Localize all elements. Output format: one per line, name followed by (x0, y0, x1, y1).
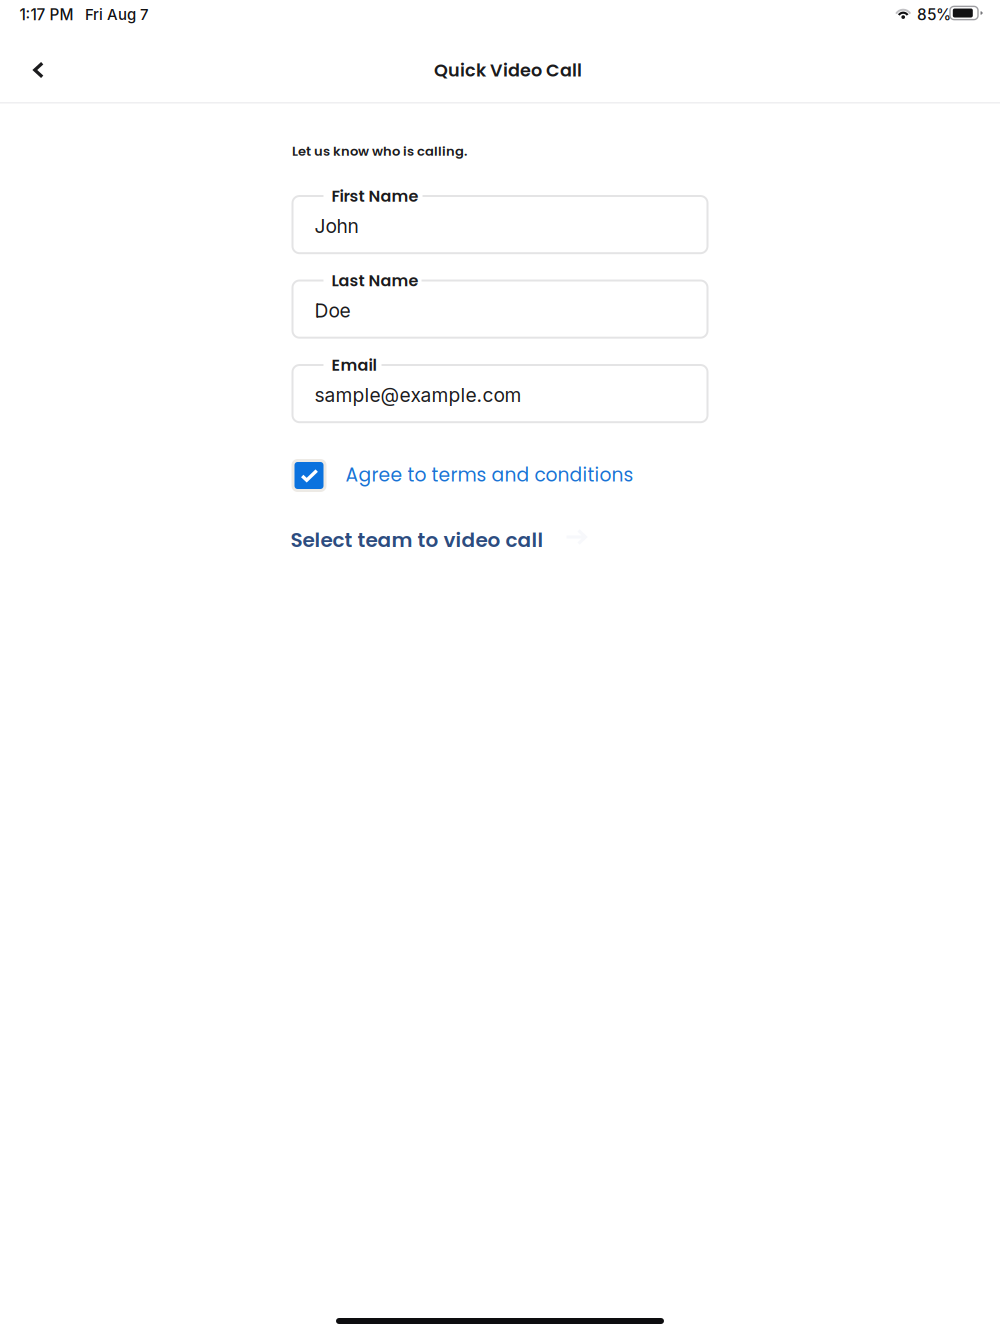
button[interactable]: Back (11, 43, 65, 97)
staticText: Agree to terms and conditions (345, 462, 633, 488)
staticText: 85% (917, 5, 951, 24)
staticText: Fri Aug 7 (85, 5, 149, 24)
staticText: Last Name (331, 269, 418, 292)
staticText: sample@example.com (314, 383, 521, 407)
staticText: Doe (314, 299, 350, 322)
button[interactable]: Select team to video call (290, 526, 620, 552)
staticText: 1:17 PM (19, 5, 73, 24)
button[interactable]: Agree to terms and conditions (291, 459, 651, 492)
staticText: First Name (331, 185, 418, 207)
staticText: Let us know who is calling. (292, 142, 467, 160)
staticText: Select team to video call (290, 526, 543, 554)
staticText: John (314, 214, 358, 238)
staticText: Quick Video Call (434, 58, 582, 83)
staticText: Email (331, 354, 376, 376)
